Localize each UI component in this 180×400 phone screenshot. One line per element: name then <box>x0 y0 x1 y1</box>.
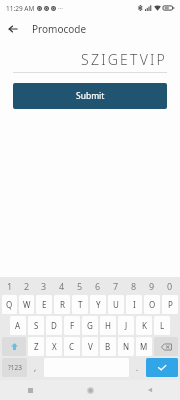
button[interactable]: G <box>82 316 98 335</box>
staticText: 7 <box>113 280 119 292</box>
button[interactable]: Submit <box>13 83 167 109</box>
staticText: V <box>88 341 93 352</box>
staticText: O <box>149 299 156 310</box>
button[interactable]: . <box>130 357 145 378</box>
button[interactable]: 5 <box>71 277 89 294</box>
button[interactable]: C <box>64 337 80 356</box>
button[interactable]: 6 <box>89 277 107 294</box>
staticText: ··· <box>58 4 63 12</box>
button[interactable]: 4 <box>53 277 71 294</box>
staticText: W <box>23 299 31 310</box>
button[interactable]: R <box>54 295 70 314</box>
staticText: 9 <box>149 280 155 292</box>
staticText: Submit <box>76 90 105 102</box>
staticText: N <box>123 341 130 352</box>
button[interactable]: E <box>36 295 52 314</box>
button[interactable]: M <box>136 337 152 356</box>
staticText: K <box>142 320 147 331</box>
staticText: G <box>87 320 93 331</box>
button[interactable]: V <box>82 337 98 356</box>
button[interactable]: Backspace <box>154 337 178 356</box>
button[interactable]: J <box>118 316 134 335</box>
staticText: Q <box>6 299 13 310</box>
button[interactable]: F <box>64 316 80 335</box>
staticText: Promocode <box>32 22 87 36</box>
staticText: A <box>15 320 21 331</box>
button[interactable]: 0 <box>161 277 179 294</box>
button[interactable]: 7 <box>107 277 125 294</box>
staticText: 3 <box>41 280 47 292</box>
button[interactable]: S <box>28 316 44 335</box>
staticText: . <box>136 362 139 373</box>
staticText: T <box>78 299 83 310</box>
button[interactable]: W <box>19 295 34 314</box>
button[interactable]: D <box>46 316 62 335</box>
button[interactable]: 3 <box>35 277 53 294</box>
staticText: E <box>42 299 47 310</box>
button[interactable]: 8 <box>125 277 143 294</box>
button[interactable]: SZIGETVIP <box>13 48 167 70</box>
button[interactable]: Y <box>90 295 106 314</box>
staticText: P <box>168 299 173 310</box>
staticText: 4 <box>59 280 65 292</box>
button[interactable]: Q <box>2 295 17 314</box>
button[interactable]: P <box>162 295 178 314</box>
button[interactable]: Back <box>0 16 26 42</box>
staticText: Z <box>34 341 39 352</box>
staticText: L <box>160 320 165 331</box>
button[interactable]: , <box>28 357 43 378</box>
button[interactable]: A <box>10 316 26 335</box>
staticText: , <box>34 362 37 373</box>
staticText: 8 <box>131 280 137 292</box>
button[interactable]: 2 <box>18 277 35 294</box>
staticText: 2 <box>24 280 30 292</box>
button[interactable]: N <box>118 337 134 356</box>
staticText: M <box>140 341 148 352</box>
button[interactable]: U <box>108 295 124 314</box>
staticText: 6 <box>95 280 101 292</box>
button[interactable]: K <box>136 316 152 335</box>
staticText: F <box>70 320 75 331</box>
button[interactable]: T <box>72 295 88 314</box>
staticText: 5 <box>77 280 83 292</box>
button[interactable]: Enter <box>146 358 178 377</box>
staticText: U <box>113 299 119 310</box>
staticText: I <box>133 299 136 310</box>
staticText: ?123 <box>8 363 22 372</box>
button[interactable]: Home <box>60 380 120 400</box>
staticText: J <box>125 320 128 331</box>
staticText: 1 <box>7 280 13 292</box>
button[interactable]: Back <box>120 380 180 400</box>
staticText: 0 <box>167 280 173 292</box>
button[interactable]: Z <box>28 337 44 356</box>
button[interactable]: Recents <box>0 380 60 400</box>
staticText: H <box>105 320 111 331</box>
button[interactable]: Shift <box>2 337 26 356</box>
button[interactable]: O <box>144 295 160 314</box>
staticText: D <box>51 320 57 331</box>
button[interactable]: H <box>100 316 116 335</box>
staticText: S <box>34 320 39 331</box>
staticText: R <box>60 299 65 310</box>
staticText: X <box>52 341 57 352</box>
button[interactable]: X <box>46 337 62 356</box>
staticText: Y <box>96 299 101 310</box>
button[interactable]: 9 <box>143 277 161 294</box>
button[interactable]: Symbols <box>2 358 27 377</box>
button[interactable]: 1 <box>1 277 18 294</box>
staticText: SZIGETVIP <box>81 50 167 69</box>
staticText: 11:29 AM <box>6 4 35 13</box>
button[interactable]: I <box>126 295 142 314</box>
staticText: B <box>105 341 111 352</box>
button[interactable]: L <box>154 316 170 335</box>
staticText: C <box>69 341 75 352</box>
button[interactable]: B <box>100 337 116 356</box>
